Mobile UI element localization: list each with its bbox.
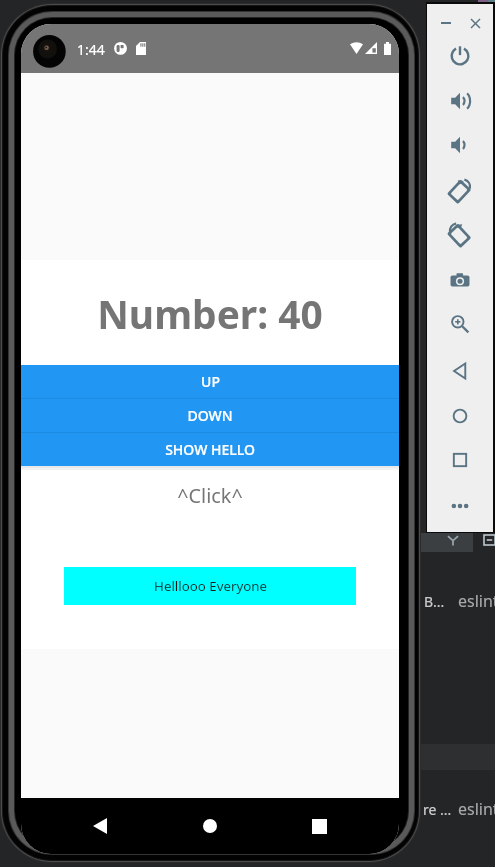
staticText: SHOW HELLO: [165, 440, 255, 459]
button[interactable]: Back: [76, 807, 124, 845]
staticText: Number: 40: [97, 287, 323, 340]
staticText: B...: [424, 592, 445, 611]
staticText: DOWN: [187, 406, 233, 425]
button[interactable]: Helllooo Everyone: [64, 567, 356, 605]
button[interactable]: Volume down: [438, 129, 482, 161]
button[interactable]: Rotate left: [438, 174, 482, 206]
button[interactable]: SHOW HELLO: [21, 433, 399, 466]
button[interactable]: Recents: [295, 807, 343, 845]
button[interactable]: UP: [21, 365, 399, 398]
button[interactable]: Volume up: [438, 85, 482, 117]
button[interactable]: DOWN: [21, 399, 399, 432]
staticText: UP: [201, 372, 220, 391]
staticText: Helllooo Everyone: [154, 577, 267, 595]
button[interactable]: Zoom: [438, 308, 482, 340]
button[interactable]: Home: [438, 400, 482, 432]
button[interactable]: Overview: [438, 444, 482, 476]
button[interactable]: Rotate right: [438, 218, 482, 250]
button[interactable]: Back: [438, 355, 482, 387]
button[interactable]: More: [438, 490, 482, 522]
button[interactable]: Home: [186, 807, 234, 845]
staticText: eslint: [458, 590, 495, 612]
staticText: ^Click^: [177, 482, 243, 509]
staticText: 1:44: [77, 40, 105, 59]
staticText: re ...: [423, 800, 452, 819]
button[interactable]: Screenshot: [438, 264, 482, 296]
button[interactable]: Close: [467, 15, 483, 31]
button[interactable]: Minimize: [438, 15, 454, 31]
staticText: eslint: [458, 798, 495, 820]
button[interactable]: Power: [438, 40, 482, 72]
